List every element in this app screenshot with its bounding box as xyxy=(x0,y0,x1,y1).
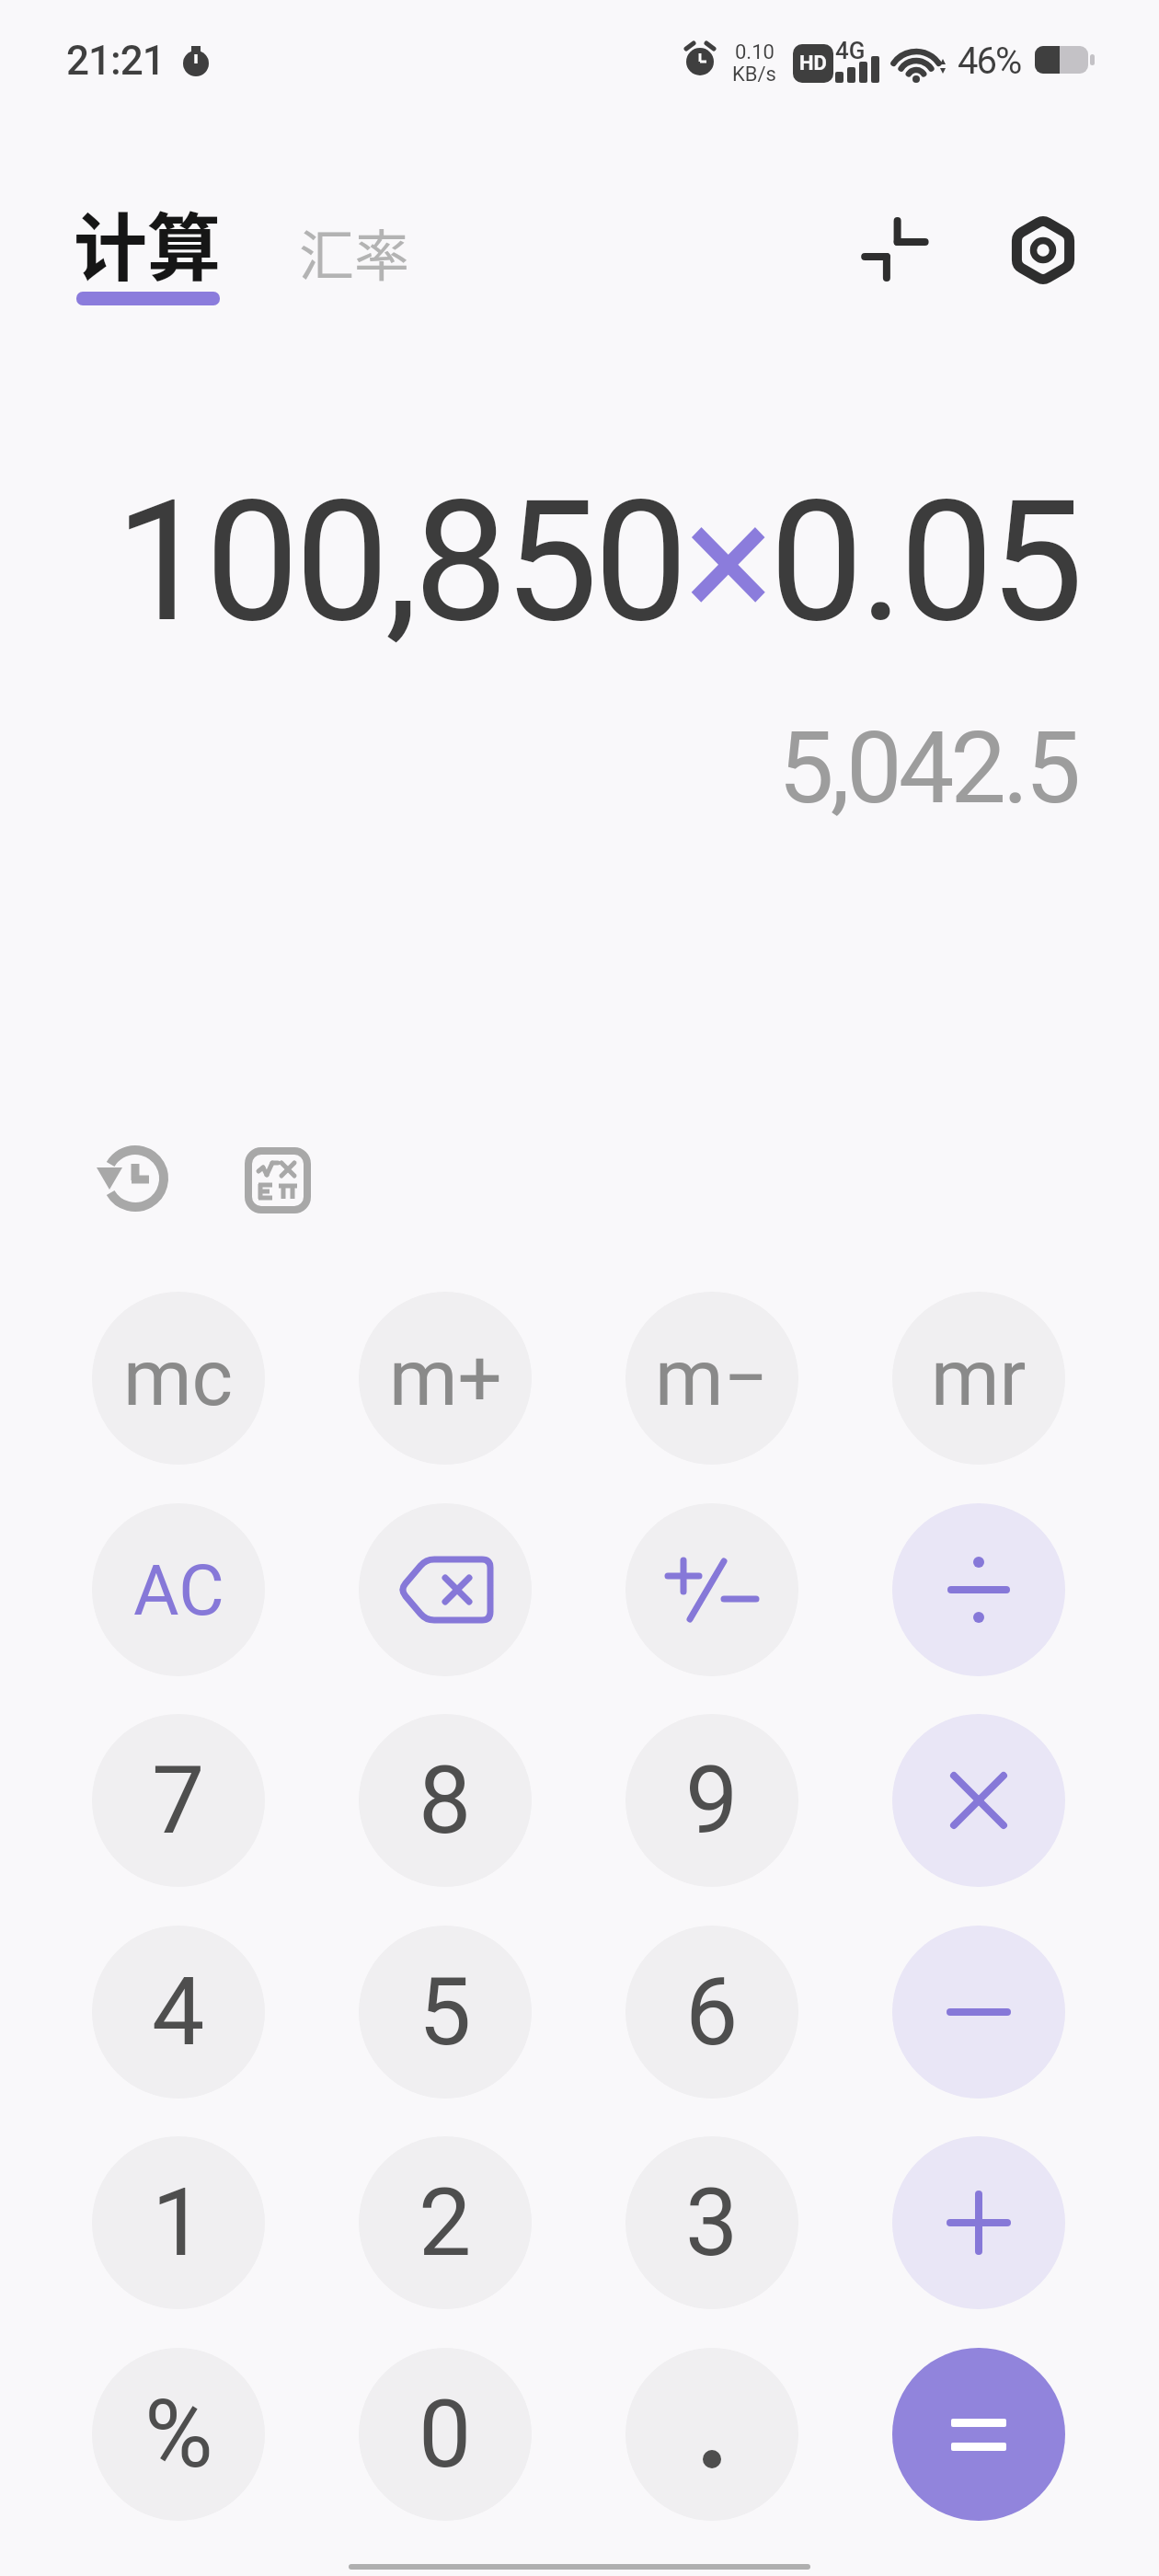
staticText: 汇率 xyxy=(299,212,409,285)
button[interactable] xyxy=(97,1144,170,1217)
staticText: AC xyxy=(133,1549,224,1631)
button[interactable] xyxy=(359,1503,532,1676)
button[interactable]: 7 xyxy=(92,1714,265,1887)
button[interactable]: mr xyxy=(892,1292,1065,1465)
button[interactable]: m− xyxy=(625,1292,798,1465)
button[interactable]: 6 xyxy=(625,1926,798,2099)
button[interactable] xyxy=(860,215,930,285)
button[interactable] xyxy=(1008,215,1078,285)
staticText: 8 xyxy=(419,1745,472,1856)
button[interactable]: 0 xyxy=(359,2348,532,2521)
button[interactable] xyxy=(892,2136,1065,2309)
button[interactable] xyxy=(625,2348,798,2521)
staticText: 5,042.5 xyxy=(778,710,1078,827)
button[interactable]: 4 xyxy=(92,1926,265,2099)
button[interactable]: 汇率 xyxy=(290,212,419,285)
button[interactable]: 2 xyxy=(359,2136,532,2309)
staticText: 46% xyxy=(958,40,1021,83)
staticText: m− xyxy=(655,1332,769,1424)
staticText: 100,850×0.05 xyxy=(115,464,1080,660)
button[interactable]: % xyxy=(92,2348,265,2521)
staticText: 21:21 xyxy=(66,37,165,85)
staticText: mc xyxy=(123,1332,234,1424)
button[interactable]: m+ xyxy=(359,1292,532,1465)
staticText: 9 xyxy=(685,1745,739,1856)
staticText: 计算 xyxy=(74,189,221,290)
staticText: % xyxy=(144,2379,213,2490)
staticText: mr xyxy=(931,1332,1027,1424)
button[interactable] xyxy=(892,1503,1065,1676)
button[interactable] xyxy=(892,1926,1065,2099)
staticText: 2 xyxy=(419,2168,472,2278)
staticText: 6 xyxy=(685,1957,739,2067)
button[interactable] xyxy=(625,1503,798,1676)
staticText: 4G xyxy=(835,37,866,63)
staticText: 4 xyxy=(152,1957,205,2067)
staticText: HD xyxy=(799,52,827,75)
staticText: 0 xyxy=(419,2379,472,2490)
button[interactable] xyxy=(892,2348,1065,2521)
staticText: 0.10 xyxy=(735,40,775,63)
button[interactable]: 9 xyxy=(625,1714,798,1887)
button[interactable]: 5 xyxy=(359,1926,532,2099)
button[interactable]: 3 xyxy=(625,2136,798,2309)
button[interactable] xyxy=(892,1714,1065,1887)
staticText: 7 xyxy=(152,1745,205,1856)
staticText: 5 xyxy=(419,1957,472,2067)
button[interactable] xyxy=(64,184,235,317)
staticText: KB/s xyxy=(732,63,776,85)
button[interactable]: 8 xyxy=(359,1714,532,1887)
staticText: 1 xyxy=(152,2168,205,2278)
button[interactable] xyxy=(245,1147,315,1217)
button[interactable]: 1 xyxy=(92,2136,265,2309)
button[interactable]: mc xyxy=(92,1292,265,1465)
staticText: m+ xyxy=(389,1332,502,1424)
staticText: 3 xyxy=(685,2168,739,2278)
button[interactable]: AC xyxy=(92,1503,265,1676)
